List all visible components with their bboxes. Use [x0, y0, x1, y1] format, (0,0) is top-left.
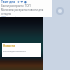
button[interactable] — [0, 17, 43, 70]
button[interactable]: Новости — [2, 43, 41, 57]
staticText: Были раскрыты ТОП — [1, 4, 31, 8]
staticText: @Newsporter — [1, 16, 20, 17]
button[interactable]: Profile — [56, 7, 64, 15]
staticText: Новости — [3, 44, 16, 48]
staticText: Твит дня ★ ❤ ● — [1, 0, 27, 4]
staticText: Магазины раскрыты новости дня сегодня — [1, 8, 52, 16]
staticText: За сегодня раскрыт — [3, 49, 26, 52]
button[interactable]: Твит дня ★ ❤ ● — [0, 0, 52, 17]
